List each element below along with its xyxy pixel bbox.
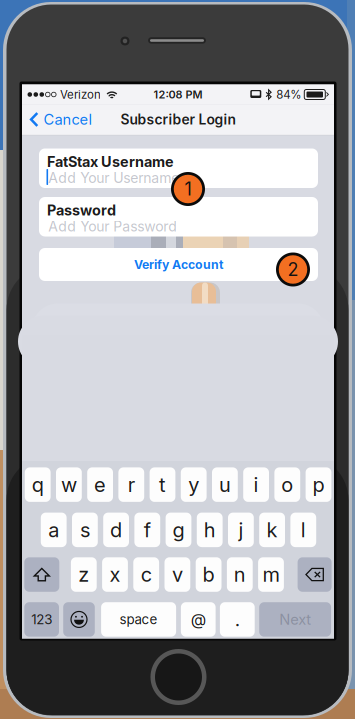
staticText: g	[172, 518, 184, 542]
button[interactable]: n	[227, 557, 253, 592]
staticText: d	[110, 518, 122, 542]
staticText: z	[78, 562, 89, 587]
staticText: 1	[184, 178, 191, 200]
button[interactable]: Password	[39, 197, 318, 236]
staticText: u	[219, 473, 231, 497]
button[interactable]: t	[150, 467, 175, 502]
button[interactable]: l	[290, 513, 316, 547]
staticText: Subscriber Login	[120, 111, 235, 128]
button[interactable]: g	[166, 513, 191, 547]
staticText: Verify Account	[134, 257, 223, 272]
staticText: q	[32, 473, 44, 497]
staticText: k	[267, 518, 278, 542]
button[interactable]: y	[181, 467, 207, 502]
staticText: Next	[279, 611, 311, 628]
button[interactable]: c	[133, 557, 159, 592]
button[interactable]: Shift	[24, 557, 59, 592]
button[interactable]: period	[220, 602, 255, 637]
staticText: @	[191, 610, 206, 629]
button[interactable]: r	[118, 467, 144, 502]
staticText: space	[120, 611, 158, 627]
button[interactable]: m	[258, 557, 284, 592]
button[interactable]: o	[274, 467, 300, 502]
staticText: o	[281, 473, 293, 497]
button[interactable]: a	[41, 513, 67, 547]
staticText: x	[109, 562, 120, 587]
button[interactable]: at sign	[181, 602, 216, 637]
button[interactable]: e	[87, 467, 113, 502]
staticText: v	[172, 562, 183, 587]
button[interactable]: Numbers	[24, 602, 59, 637]
button[interactable]: p	[306, 467, 331, 502]
button[interactable]: z	[71, 557, 97, 592]
staticText: t	[159, 473, 166, 497]
staticText: Cancel	[44, 111, 93, 128]
staticText: .	[235, 608, 240, 631]
button[interactable]: FatStax Username	[39, 148, 318, 188]
button[interactable]: Next	[259, 602, 331, 637]
staticText: r	[128, 473, 135, 497]
staticText: a	[48, 518, 59, 542]
button[interactable]: Emoji	[63, 602, 95, 637]
staticText: c	[141, 562, 152, 587]
button[interactable]: space	[101, 602, 176, 637]
staticText: y	[188, 473, 199, 497]
staticText: n	[234, 562, 246, 587]
button[interactable]: w	[56, 467, 82, 502]
staticText: 2	[287, 259, 298, 280]
staticText: Password	[47, 201, 116, 219]
button[interactable]: s	[72, 513, 98, 547]
staticText: i	[254, 473, 259, 497]
staticText: s	[80, 518, 90, 542]
staticText: w	[61, 473, 77, 497]
button[interactable]: Delete	[298, 557, 332, 592]
staticText: Verizon	[60, 88, 101, 101]
staticText: m	[262, 562, 279, 587]
button[interactable]: d	[103, 513, 129, 547]
button[interactable]: q	[25, 467, 51, 502]
button[interactable]: h	[197, 513, 223, 547]
staticText: e	[94, 473, 106, 497]
staticText: 84%	[276, 88, 301, 101]
staticText: l	[301, 518, 306, 542]
staticText: 123	[31, 611, 52, 627]
staticText: h	[204, 518, 216, 542]
staticText: Add Your Password	[48, 218, 177, 235]
staticText: 12:08 PM	[153, 88, 202, 101]
staticText: Add Your Username	[48, 169, 179, 186]
staticText: p	[312, 473, 324, 497]
button[interactable]: Cancel	[22, 104, 102, 134]
button[interactable]: Verify Account	[39, 248, 318, 281]
button[interactable]: f	[134, 513, 160, 547]
staticText: j	[238, 518, 243, 542]
button[interactable]: v	[164, 557, 190, 592]
staticText: f	[144, 518, 151, 542]
button[interactable]: i	[243, 467, 269, 502]
staticText: b	[203, 562, 215, 587]
button[interactable]: x	[102, 557, 128, 592]
staticText: FatStax Username	[47, 153, 174, 170]
button[interactable]: u	[212, 467, 238, 502]
button[interactable]: b	[196, 557, 221, 592]
button[interactable]: j	[228, 513, 254, 547]
button[interactable]: k	[259, 513, 285, 547]
